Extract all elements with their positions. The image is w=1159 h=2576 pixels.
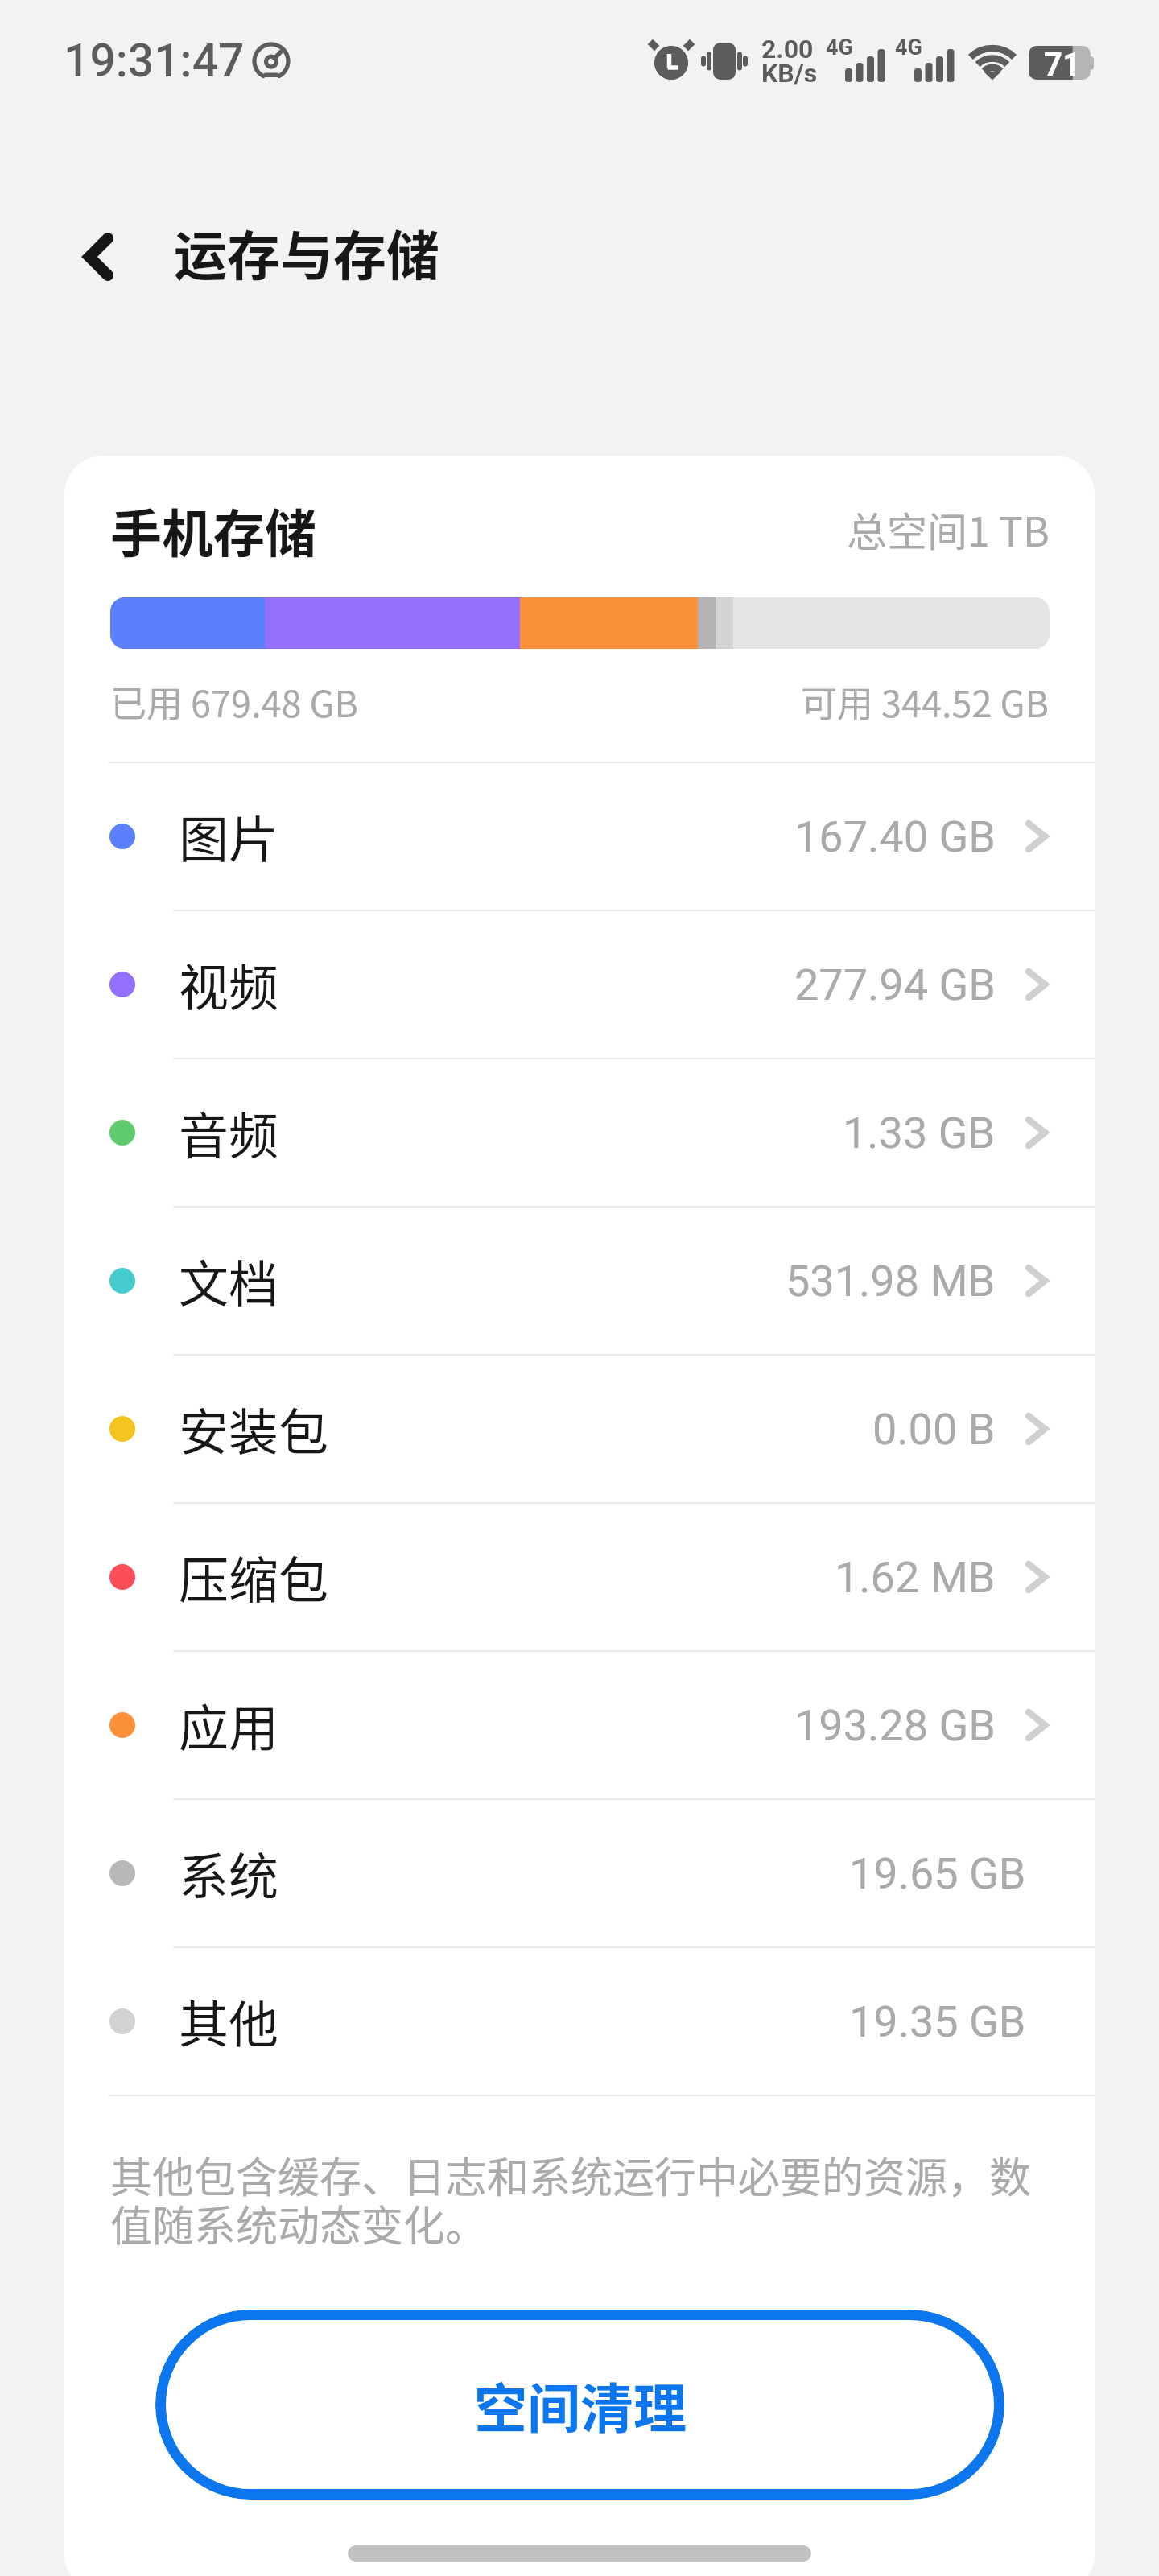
staticText: 2.00	[761, 34, 814, 64]
staticText: 531.98 MB	[786, 1256, 996, 1307]
staticText: 运存与存储	[174, 213, 439, 291]
staticText: 277.94 GB	[794, 960, 996, 1010]
button[interactable]: 音频	[64, 1059, 1095, 1206]
staticText: 71	[1044, 46, 1081, 84]
staticText: KB/s	[761, 58, 818, 89]
staticText: 1.33 GB	[843, 1108, 996, 1158]
button[interactable]: 应用	[64, 1652, 1095, 1798]
staticText: 安装包	[179, 1393, 329, 1465]
button[interactable]: 安装包	[64, 1356, 1095, 1502]
staticText: 已用 679.48 GB	[110, 675, 359, 728]
staticText: 文档	[179, 1245, 279, 1317]
staticText: 其他包含缓存、日志和系统运行中必要的资源，数 值随系统动态变化。	[110, 2145, 1032, 2253]
button[interactable]: 视频	[64, 911, 1095, 1058]
staticText: 4G	[826, 35, 853, 60]
staticText: 19:31:47	[64, 34, 245, 88]
button[interactable]: 其他	[64, 1948, 1095, 2095]
staticText: 视频	[179, 948, 279, 1021]
staticText: 总空间1 TB	[847, 500, 1050, 558]
button[interactable]: 图片	[64, 763, 1095, 910]
button[interactable]: 空间清理	[155, 2310, 1004, 2500]
staticText: 167.40 GB	[794, 811, 996, 862]
staticText: 其他	[179, 1985, 279, 2058]
staticText: 可用 344.52 GB	[801, 675, 1050, 728]
staticText: 1.62 MB	[835, 1552, 996, 1603]
staticText: 19.35 GB	[849, 1996, 1026, 2047]
staticText: 193.28 GB	[794, 1700, 996, 1751]
button[interactable]: 系统	[64, 1800, 1095, 1946]
staticText: 图片	[179, 800, 279, 873]
staticText: 压缩包	[179, 1541, 329, 1613]
staticText: 应用	[179, 1689, 279, 1761]
staticText: 空间清理	[474, 2366, 687, 2443]
staticText: 系统	[179, 1837, 279, 1909]
staticText: 0.00 B	[872, 1404, 996, 1455]
button[interactable]: Back	[0, 200, 174, 304]
staticText: 4G	[895, 35, 922, 60]
button[interactable]: 文档	[64, 1207, 1095, 1354]
staticText: 手机存储	[110, 493, 316, 565]
button[interactable]: 压缩包	[64, 1504, 1095, 1650]
staticText: 音频	[179, 1096, 279, 1169]
staticText: 19.65 GB	[849, 1848, 1026, 1899]
